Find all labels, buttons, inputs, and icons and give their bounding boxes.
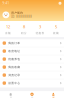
staticText: 优惠券 (35, 31, 44, 35)
staticText: 我的收藏 (8, 65, 20, 69)
button[interactable]: Settings (58, 2, 61, 5)
button[interactable]: 浏览记录 (0, 71, 64, 79)
staticText: 12 (6, 24, 10, 29)
staticText: 我的 (52, 97, 54, 98)
button[interactable]: 我的订单 (0, 39, 64, 47)
staticText: 我的订单 (8, 41, 20, 45)
staticText: 5 (55, 24, 57, 29)
staticText: 收货地址 (8, 49, 20, 53)
staticText: 3 (39, 24, 41, 29)
staticText: 优惠券包 (8, 57, 20, 61)
staticText: 9:41 (2, 1, 9, 5)
button[interactable]: 我的收藏 (0, 63, 64, 71)
button[interactable]: 我的 (43, 93, 64, 98)
staticText: 用户昵称 (11, 11, 23, 15)
button[interactable]: 8 (16, 24, 32, 35)
button[interactable]: 5 (48, 24, 64, 35)
staticText: 余额 (5, 31, 11, 35)
staticText: ID: 88888888 (11, 15, 32, 18)
button[interactable]: 优惠券包 (0, 55, 64, 63)
button[interactable]: 首页 (0, 93, 21, 98)
button[interactable]: 设置中心 (0, 79, 64, 87)
button[interactable]: 分类 (21, 93, 43, 98)
staticText: 积分 (21, 31, 27, 35)
staticText: 收藏 (53, 31, 59, 35)
button[interactable]: 用户昵称 (0, 11, 64, 18)
staticText: 设置中心 (8, 81, 20, 85)
button[interactable]: 3 (32, 24, 48, 35)
button[interactable]: 12 (0, 24, 16, 35)
staticText: 浏览记录 (8, 73, 20, 77)
staticText: 8 (23, 24, 25, 29)
button[interactable]: 收货地址 (0, 47, 64, 55)
